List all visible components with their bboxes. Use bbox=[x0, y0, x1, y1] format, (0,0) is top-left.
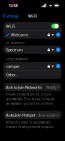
staticText: Settings bbox=[6, 13, 19, 19]
button[interactable]: Wi-Fi bbox=[3, 22, 61, 30]
staticText: Notify bbox=[46, 84, 56, 90]
staticText: Wi-Fi bbox=[28, 13, 37, 19]
staticText: 12:58 bbox=[8, 3, 17, 8]
button[interactable]: Welcome bbox=[3, 30, 61, 39]
staticText: MY NETWORKS bbox=[6, 41, 24, 44]
staticText: i bbox=[58, 48, 59, 51]
staticText: i bbox=[58, 64, 59, 68]
button[interactable]: Spectrum bbox=[3, 46, 61, 54]
button[interactable]: Other… bbox=[3, 71, 61, 79]
button[interactable]: Ask to Join Networks bbox=[3, 83, 61, 91]
staticText: Ask to Join bbox=[38, 112, 56, 118]
staticText: i bbox=[58, 33, 59, 36]
staticText: Allow this device to automatically disco… bbox=[6, 121, 54, 129]
button[interactable]: Settings bbox=[0, 11, 19, 21]
staticText: OTHER NETWORKS bbox=[6, 57, 28, 61]
staticText: Spectrum bbox=[6, 47, 23, 52]
staticText: Auto-Join Hotspot bbox=[6, 112, 35, 118]
staticText: Other… bbox=[6, 72, 18, 77]
staticText: Welcome bbox=[11, 32, 28, 37]
button[interactable]: Auto-Join Hotspot bbox=[3, 111, 61, 119]
staticText: Known networks will be joined automatica… bbox=[6, 93, 54, 106]
staticText: Wi-Fi bbox=[6, 23, 15, 29]
button[interactable]: camper bbox=[3, 62, 61, 70]
staticText: Ask to Join Networks bbox=[6, 84, 42, 90]
staticText: camper bbox=[6, 63, 20, 69]
